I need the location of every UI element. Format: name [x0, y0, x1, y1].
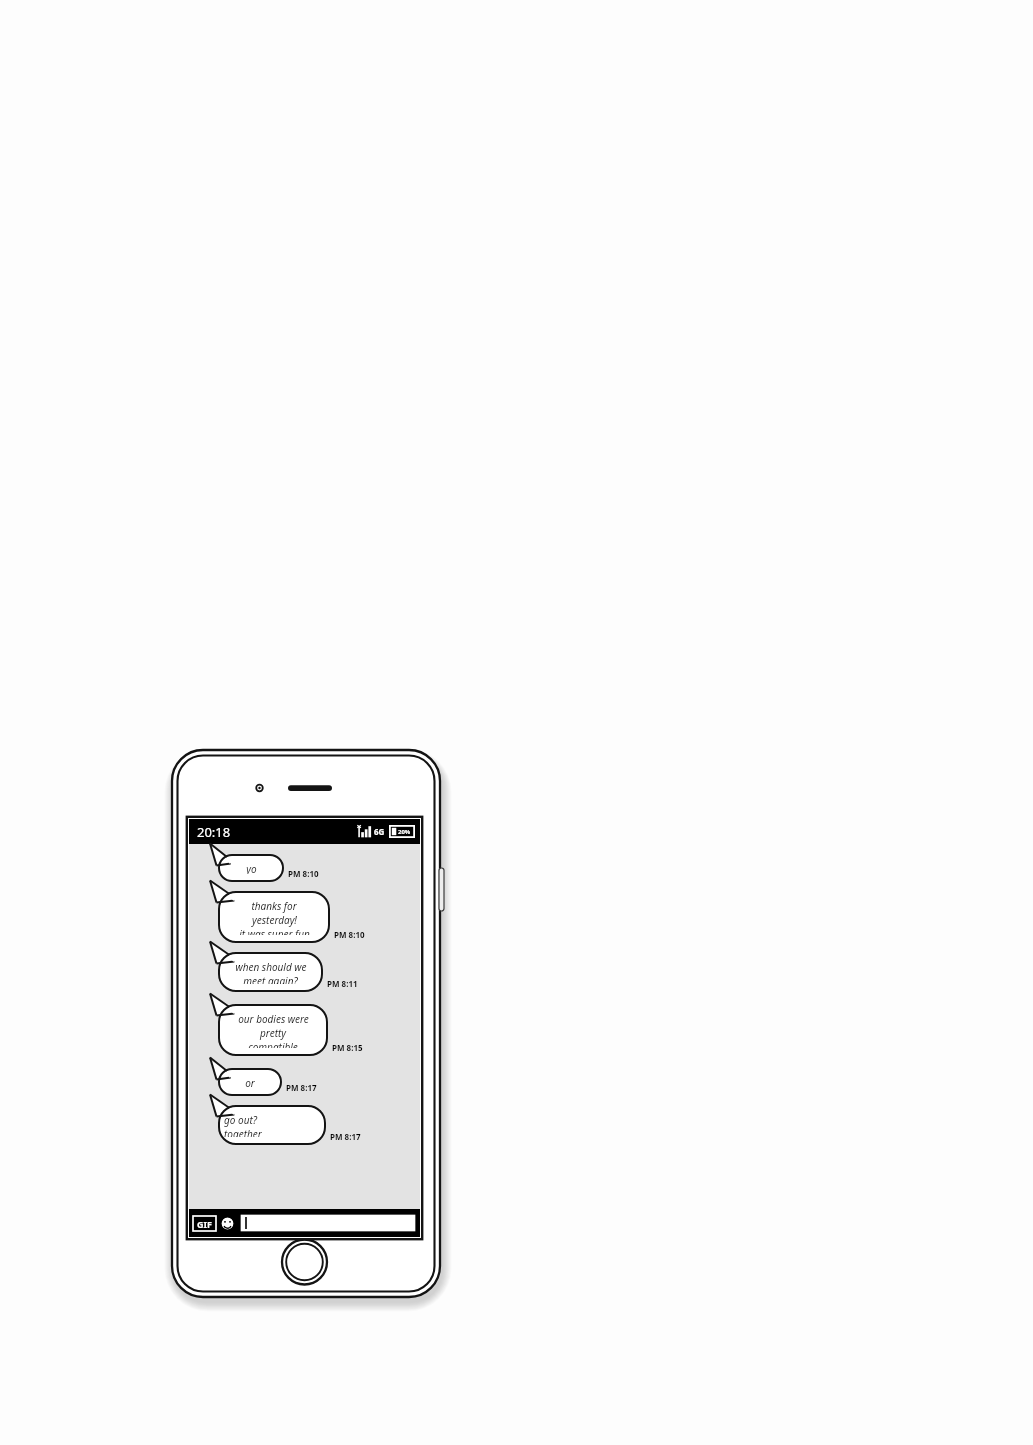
- button[interactable]: Message input: [240, 1214, 416, 1232]
- staticText: our bodies were: [238, 1012, 309, 1026]
- staticText: 20:18: [197, 823, 231, 841]
- staticText: 20%: [398, 828, 411, 836]
- staticText: PM 8:11: [327, 978, 358, 989]
- staticText: meet again?: [243, 974, 298, 984]
- button[interactable]: yo: [219, 855, 283, 881]
- staticText: PM 8:10: [334, 929, 365, 940]
- staticText: yesterday!: [252, 913, 297, 927]
- staticText: thanks for: [251, 899, 297, 913]
- staticText: PM 8:15: [332, 1042, 363, 1053]
- staticText: go out?: [224, 1113, 258, 1127]
- staticText: when should we: [235, 960, 307, 974]
- button[interactable]: thanks for: [219, 892, 329, 942]
- staticText: pretty: [260, 1026, 286, 1040]
- button[interactable]: Emoji: [220, 1216, 235, 1231]
- button[interactable]: when should we: [219, 953, 322, 991]
- staticText: GIF: [197, 1218, 212, 1230]
- button[interactable]: our bodies were: [219, 1005, 327, 1055]
- staticText: PM 8:10: [288, 868, 319, 879]
- button[interactable]: Send a GIF: [193, 1216, 216, 1231]
- staticText: PM 8:17: [286, 1082, 317, 1093]
- staticText: or: [245, 1076, 255, 1088]
- staticText: together: [224, 1127, 262, 1137]
- staticText: it was super fun: [239, 927, 310, 935]
- staticText: 6G: [374, 826, 385, 837]
- staticText: PM 8:17: [330, 1131, 361, 1142]
- staticText: yo: [246, 862, 257, 874]
- button[interactable]: go out?: [219, 1106, 325, 1144]
- button[interactable]: or: [219, 1069, 281, 1095]
- staticText: compatible: [248, 1040, 298, 1048]
